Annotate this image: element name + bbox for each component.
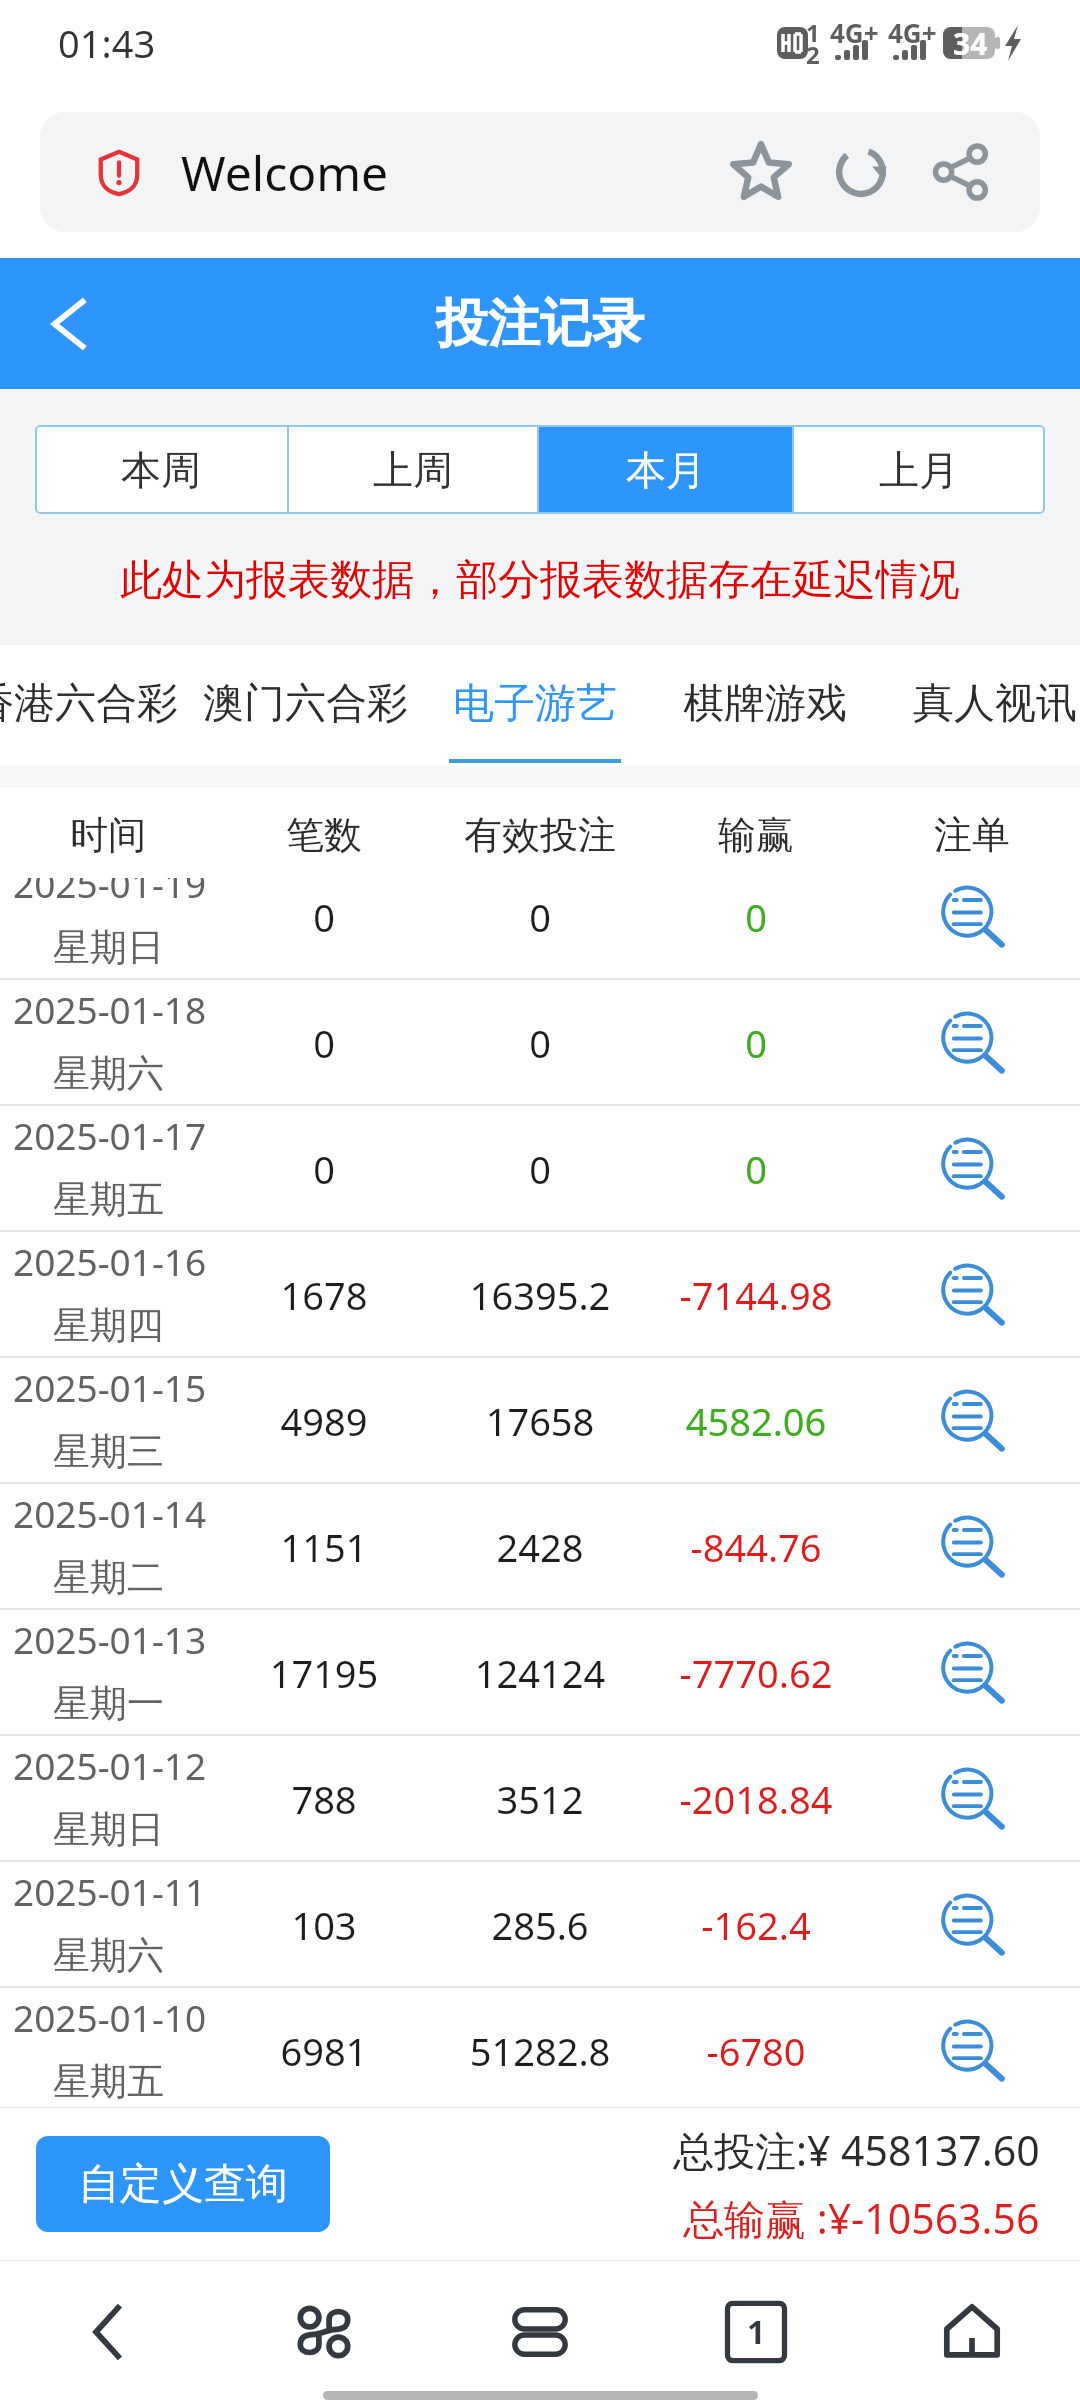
button[interactable]: 本周 [35, 425, 287, 514]
button[interactable]: 2025-01-15 [0, 1358, 1080, 1484]
staticText: 2025-01-17 [13, 1110, 207, 1160]
staticText: 星期三 [53, 1428, 164, 1475]
staticText: 星期日 [53, 924, 164, 971]
staticText: 124124 [432, 1647, 648, 1699]
staticText: 2025-01-12 [13, 1740, 207, 1790]
staticText: 103 [216, 1899, 432, 1951]
staticText: 本月 [626, 445, 706, 495]
staticText: 星期四 [53, 1302, 164, 1349]
button[interactable]: Welcome [40, 112, 1040, 232]
staticText: -7770.62 [648, 1647, 864, 1699]
staticText: -6780 [648, 2025, 864, 2077]
staticText: 棋牌游戏 [683, 678, 847, 730]
staticText: 0 [648, 891, 864, 943]
staticText: 2025-01-11 [13, 1866, 207, 1916]
staticText: 本周 [121, 445, 201, 495]
button[interactable]: Refresh [826, 137, 896, 207]
staticText: 投注记录 [436, 291, 644, 357]
staticText: 0 [432, 1143, 648, 1195]
staticText: 星期二 [53, 1554, 164, 1601]
staticText: 2025-01-18 [13, 984, 207, 1034]
staticText: 0 [216, 1017, 432, 1069]
button[interactable]: Tabs [432, 2285, 648, 2378]
staticText: 总投注:¥ 458137.60 [673, 2122, 1040, 2178]
staticText: 0 [216, 891, 432, 943]
button[interactable]: 2025-01-11 [0, 1862, 1080, 1988]
staticText: 1678 [216, 1269, 432, 1321]
staticText: 2025-01-19 [13, 878, 207, 908]
staticText: 电子游艺 [453, 678, 617, 730]
staticText: 2025-01-13 [13, 1614, 207, 1664]
staticText: -844.76 [648, 1521, 864, 1573]
staticText: 此处为报表数据，部分报表数据存在延迟情况 [0, 554, 1080, 607]
button[interactable]: Back [28, 284, 108, 364]
staticText: 2428 [432, 1521, 648, 1573]
staticText: 澳门六合彩 [203, 678, 408, 730]
staticText: 788 [216, 1773, 432, 1825]
staticText: 0 [648, 1017, 864, 1069]
staticText: Welcome [181, 140, 389, 205]
button[interactable]: Bookmark [726, 137, 796, 207]
button[interactable]: 2025-01-13 [0, 1610, 1080, 1736]
staticText: 输赢 [648, 811, 864, 859]
staticText: 星期一 [53, 1680, 164, 1727]
staticText: 星期日 [53, 1806, 164, 1853]
staticText: 1151 [216, 1521, 432, 1573]
button[interactable]: Back [0, 2285, 216, 2378]
button[interactable]: 2025-01-17 [0, 1106, 1080, 1232]
staticText: 星期五 [53, 2058, 164, 2105]
staticText: -2018.84 [648, 1773, 864, 1825]
staticText: 6981 [216, 2025, 432, 2077]
staticText: 17195 [216, 1647, 432, 1699]
staticText: 2 [806, 38, 820, 71]
button[interactable]: Home [864, 2285, 1080, 2378]
staticText: 0 [432, 1017, 648, 1069]
staticText: 1 [747, 2310, 766, 2354]
staticText: 有效投注 [432, 811, 648, 859]
button[interactable]: Apps [216, 2285, 432, 2378]
button[interactable]: 2025-01-10 [0, 1988, 1080, 2107]
button[interactable]: 上周 [287, 425, 539, 514]
staticText: 2025-01-14 [13, 1488, 207, 1538]
staticText: 笔数 [216, 811, 432, 859]
staticText: 01:43 [58, 17, 156, 69]
staticText: 17658 [432, 1395, 648, 1447]
button[interactable]: 棋牌游戏 [650, 645, 880, 766]
button[interactable]: Share [926, 137, 996, 207]
button[interactable]: 2025-01-16 [0, 1232, 1080, 1358]
staticText: 星期六 [53, 1932, 164, 1979]
button[interactable]: 2025-01-14 [0, 1484, 1080, 1610]
staticText: 注单 [864, 811, 1080, 859]
staticText: 4989 [216, 1395, 432, 1447]
button[interactable]: 自定义查询 [36, 2136, 330, 2232]
staticText: 自定义查询 [78, 2158, 288, 2211]
staticText: 2025-01-10 [13, 1992, 207, 2042]
staticText: 真人视讯 [913, 678, 1077, 730]
staticText: -7144.98 [648, 1269, 864, 1321]
button[interactable]: 本月 [539, 425, 792, 514]
button[interactable]: 2025-01-19 [0, 878, 1080, 980]
button[interactable]: 2025-01-18 [0, 980, 1080, 1106]
staticText: 2025-01-16 [13, 1236, 207, 1286]
staticText: 1 [806, 16, 820, 49]
staticText: 285.6 [432, 1899, 648, 1951]
staticText: 4G+ [830, 15, 879, 50]
staticText: 总输赢 :¥-10563.56 [683, 2190, 1040, 2246]
staticText: 0 [432, 891, 648, 943]
button[interactable]: 2025-01-12 [0, 1736, 1080, 1862]
button[interactable]: 澳门六合彩 [190, 645, 420, 766]
staticText: 4G+ [888, 15, 937, 50]
button[interactable]: 电子游艺 [420, 645, 650, 766]
button[interactable]: 香港六合彩 [0, 645, 190, 766]
staticText: -162.4 [648, 1899, 864, 1951]
staticText: 4582.06 [648, 1395, 864, 1447]
staticText: 34 [953, 23, 988, 64]
button[interactable]: 真人视讯 [880, 645, 1080, 766]
staticText: 3512 [432, 1773, 648, 1825]
staticText: 星期六 [53, 1050, 164, 1097]
staticText: 上周 [373, 445, 453, 495]
button[interactable]: Windows [648, 2285, 864, 2378]
button[interactable]: 上月 [792, 425, 1045, 514]
staticText: 0 [216, 1143, 432, 1195]
staticText: 香港六合彩 [0, 678, 178, 730]
